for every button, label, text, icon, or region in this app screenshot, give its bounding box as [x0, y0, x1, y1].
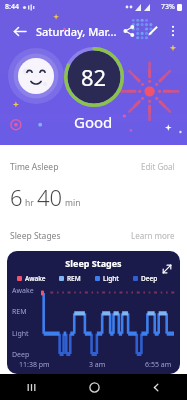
staticText: REM [67, 274, 81, 283]
staticText: 40 [37, 182, 63, 212]
button[interactable]: Recent apps [0, 374, 63, 400]
staticText: 11:38 pm [19, 360, 50, 370]
staticText: hr [25, 197, 34, 209]
button[interactable]: Learn more [129, 228, 177, 243]
staticText: 3 am [89, 360, 106, 370]
staticText: Sleep Stages [10, 230, 61, 242]
staticText: Light [12, 329, 29, 339]
staticText: min [65, 197, 81, 209]
button[interactable]: Edit [141, 19, 165, 43]
button[interactable]: Edit Goal [139, 159, 177, 174]
button[interactable]: Back [6, 18, 32, 44]
button[interactable]: Expand chart [159, 261, 175, 277]
button[interactable]: Back [125, 374, 187, 400]
staticText: 6 [10, 182, 23, 212]
button[interactable]: More options [165, 21, 181, 41]
staticText: 82 [81, 62, 107, 92]
staticText: Awake [12, 286, 34, 296]
staticText: Saturday, Mar... [36, 24, 117, 39]
staticText: Deep [141, 274, 158, 283]
button[interactable]: Sleep Stages [7, 251, 180, 374]
staticText: Sleep Stages [65, 257, 122, 269]
staticText: Time Asleep [10, 161, 59, 173]
staticText: REM [12, 307, 27, 317]
staticText: Good [74, 112, 113, 132]
staticText: 6:55 am [145, 360, 172, 370]
staticText: Light [103, 274, 119, 283]
staticText: Learn more [131, 230, 175, 241]
staticText: 73% [161, 2, 175, 12]
staticText: Edit Goal [141, 161, 175, 172]
staticText: 8:44 [5, 2, 19, 12]
staticText: Deep [12, 350, 30, 360]
button[interactable]: Home [63, 374, 125, 400]
button[interactable]: Share [117, 19, 141, 43]
staticText: Awake [25, 274, 46, 283]
